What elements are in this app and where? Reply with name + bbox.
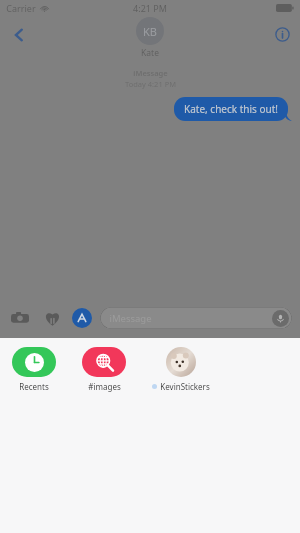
button[interactable]: Apps (72, 308, 92, 328)
staticText: Recents (19, 381, 49, 392)
staticText: Today 4:21 PM (125, 79, 176, 89)
button[interactable]: Camera (8, 306, 32, 330)
button[interactable]: Details (269, 21, 295, 47)
button[interactable]: Kate, check this out! (174, 97, 288, 121)
button[interactable]: #images (80, 347, 128, 392)
staticText: Carrier (6, 2, 36, 14)
staticText: KevinStickers (160, 381, 210, 392)
staticText: Kate, check this out! (184, 102, 278, 116)
staticText: #images (88, 381, 121, 392)
button[interactable]: KevinStickers (150, 347, 212, 392)
button[interactable]: iMessage (100, 307, 292, 329)
staticText: iMessage (133, 68, 168, 78)
staticText: KB (143, 24, 157, 39)
button[interactable]: Digital Touch (40, 306, 64, 330)
button[interactable]: Back (4, 20, 34, 50)
button[interactable]: Dictate (272, 310, 289, 327)
button[interactable]: KB (136, 17, 164, 58)
staticText: Kate (141, 47, 159, 58)
staticText: iMessage (109, 312, 152, 325)
staticText: 4:21 PM (133, 2, 167, 14)
button[interactable]: Recents (10, 347, 58, 392)
